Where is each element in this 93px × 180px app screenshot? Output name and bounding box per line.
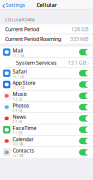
staticText: 333 MB bbox=[70, 35, 88, 42]
staticText: CELLULAR DATA bbox=[5, 17, 35, 22]
staticText: 8.9 GB bbox=[13, 120, 23, 124]
button[interactable]: FaceTime bbox=[0, 124, 93, 135]
staticText: System Services bbox=[16, 59, 57, 66]
staticText: 12.7 GB bbox=[13, 75, 25, 78]
button[interactable]: System Services bbox=[0, 58, 93, 67]
button[interactable]: Current Period bbox=[0, 24, 93, 34]
staticText: 11.1 GB bbox=[13, 86, 25, 90]
staticText: 13.1 GB bbox=[13, 54, 25, 57]
button[interactable]: Mail bbox=[0, 47, 93, 58]
staticText: 500 MB bbox=[13, 143, 24, 146]
staticText: Safari bbox=[13, 68, 27, 75]
staticText: 7.1 GB bbox=[13, 131, 23, 135]
staticText: Photos bbox=[13, 102, 30, 109]
staticText: Settings bbox=[5, 1, 25, 9]
button[interactable]: ‹ bbox=[0, 0, 25, 12]
staticText: Current Period Roaming bbox=[5, 35, 61, 42]
staticText: 9.4 GB bbox=[13, 98, 23, 101]
staticText: Music bbox=[13, 90, 28, 98]
button[interactable]: Photos bbox=[0, 102, 93, 113]
staticText: 128 GB bbox=[71, 25, 88, 33]
staticText: FaceTime bbox=[13, 124, 37, 131]
button[interactable]: Music bbox=[0, 90, 93, 101]
button[interactable]: App Store bbox=[0, 79, 93, 90]
staticText: Cellular bbox=[36, 1, 56, 9]
staticText: Calendar bbox=[13, 136, 34, 143]
staticText: › bbox=[87, 58, 89, 67]
button[interactable]: Safari bbox=[0, 68, 93, 79]
staticText: Current Period bbox=[5, 25, 39, 33]
staticText: 13.1 GB bbox=[68, 59, 86, 66]
staticText: App Store bbox=[13, 79, 36, 86]
staticText: News bbox=[13, 113, 27, 120]
button[interactable]: Contacts bbox=[0, 147, 93, 158]
staticText: Mail bbox=[13, 47, 23, 54]
button[interactable]: Calendar bbox=[0, 135, 93, 146]
button[interactable]: Current Period Roaming bbox=[0, 34, 93, 44]
button[interactable]: News bbox=[0, 113, 93, 124]
staticText: ‹ bbox=[2, 0, 5, 11]
staticText: 8.8 GB bbox=[13, 109, 23, 112]
staticText: 121 MB bbox=[13, 154, 24, 158]
staticText: Contacts bbox=[13, 147, 35, 154]
